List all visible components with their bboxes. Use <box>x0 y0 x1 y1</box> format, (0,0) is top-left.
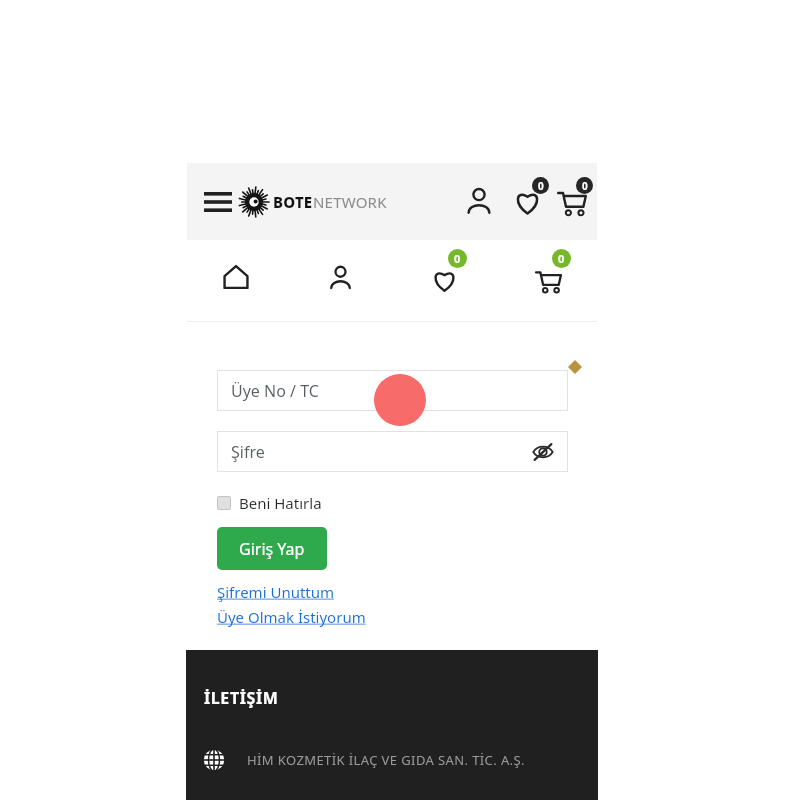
button[interactable]: Giriş Yap <box>217 527 327 570</box>
staticText: İLETİŞİM <box>204 687 279 709</box>
button[interactable]: Home <box>210 253 262 301</box>
staticText: Beni Hatırla <box>239 493 322 513</box>
button[interactable]: Favorites <box>416 249 472 301</box>
button[interactable]: Üye No / TC <box>217 370 568 411</box>
button[interactable]: Menu <box>200 185 236 219</box>
staticText: Şifre <box>231 441 265 463</box>
button[interactable]: Üye Olmak İstiyorum <box>217 607 366 627</box>
staticText: BOTE <box>273 192 313 212</box>
staticText: Üye No / TC <box>231 380 319 402</box>
button[interactable]: Cart <box>520 249 576 301</box>
button[interactable]: Show password <box>530 439 556 465</box>
staticText: 0 <box>538 179 544 193</box>
button[interactable]: Profile <box>314 253 366 301</box>
button[interactable]: Beni Hatırla <box>217 493 322 513</box>
button[interactable]: Şifremi Unuttum <box>217 582 335 602</box>
staticText: 0 <box>454 251 461 266</box>
button[interactable]: Account <box>459 181 499 221</box>
staticText: Giriş Yap <box>239 538 305 560</box>
staticText: 0 <box>558 251 565 266</box>
button[interactable]: Şifre <box>217 431 568 472</box>
button[interactable]: Favorites <box>504 175 550 221</box>
staticText: NETWORK <box>313 192 387 212</box>
button[interactable]: Cart <box>549 175 595 221</box>
staticText: HİM KOZMETİK İLAÇ VE GIDA SAN. TİC. A.Ş. <box>247 751 525 769</box>
staticText: 0 <box>582 179 588 193</box>
button[interactable]: BOTE <box>239 183 387 221</box>
